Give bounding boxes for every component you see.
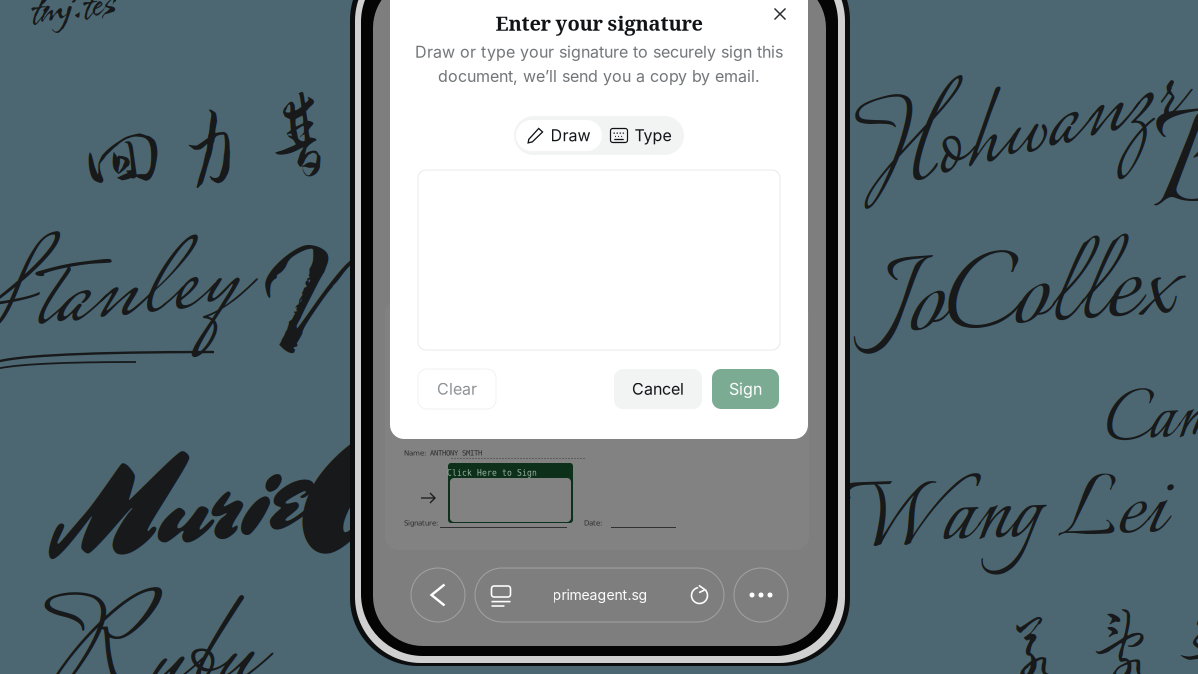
staticText: 若乱丰 bbox=[992, 607, 1198, 674]
staticText: Clear bbox=[437, 379, 477, 399]
staticText: Draw bbox=[550, 126, 590, 145]
staticText: Camil bbox=[1103, 365, 1198, 475]
staticText: 回力普 bbox=[78, 101, 339, 187]
staticText: Name: bbox=[404, 449, 426, 457]
button[interactable]: Clear bbox=[418, 369, 496, 409]
staticText: A bbox=[299, 384, 396, 616]
staticText: tmj.tes bbox=[30, 0, 114, 40]
button[interactable]: primeagent.sg bbox=[475, 568, 724, 622]
staticText: M bbox=[263, 190, 417, 410]
button[interactable]: Cancel bbox=[614, 369, 702, 409]
staticText: Sign bbox=[729, 379, 762, 399]
staticText: Hohwanzr bbox=[856, 43, 1183, 226]
button[interactable]: Sign bbox=[712, 369, 779, 409]
staticText: Enter your signature bbox=[495, 9, 702, 37]
staticText: B bbox=[1151, 70, 1198, 270]
button[interactable]: More bbox=[734, 568, 788, 622]
staticText: Muriel bbox=[56, 428, 344, 582]
staticText: document, we’ll send you a copy by email… bbox=[438, 66, 760, 86]
staticText: ANTHONY SMITH bbox=[430, 449, 482, 457]
button[interactable]: Close bbox=[768, 2, 792, 26]
staticText: Type bbox=[634, 126, 671, 145]
staticText: Click Here to Sign bbox=[447, 468, 537, 478]
staticText: Wang Lei bbox=[844, 449, 1165, 585]
button[interactable]: Draw bbox=[516, 120, 602, 151]
staticText: JoCollex bbox=[881, 215, 1179, 381]
staticText: Stanley bbox=[0, 206, 242, 394]
staticText: Draw or type your signature to securely … bbox=[415, 42, 783, 61]
staticText: primeagent.sg bbox=[552, 586, 647, 603]
button[interactable]: Back bbox=[410, 568, 466, 622]
staticText: Rubu bbox=[43, 563, 257, 674]
staticText: Date: bbox=[584, 519, 602, 527]
button[interactable]: Type bbox=[604, 120, 678, 151]
staticText: Cancel bbox=[632, 379, 684, 399]
staticText: Signature: bbox=[404, 519, 438, 527]
